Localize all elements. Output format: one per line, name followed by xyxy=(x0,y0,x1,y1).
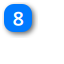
staticText: 8 xyxy=(12,5,23,31)
